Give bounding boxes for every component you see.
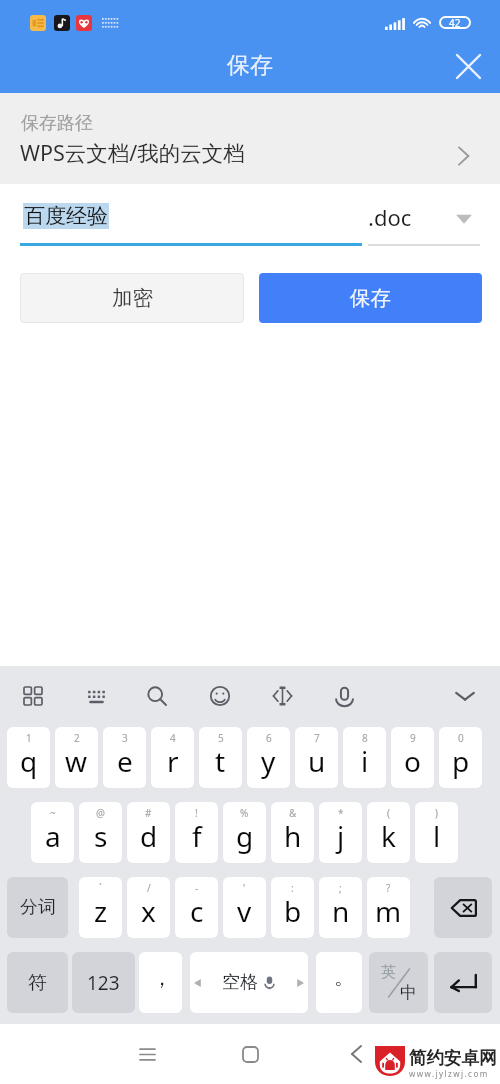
button[interactable]: 符 — [7, 952, 68, 1013]
staticText: w — [65, 742, 88, 780]
button[interactable]: - — [175, 877, 218, 938]
button[interactable]: 4 — [151, 727, 194, 788]
staticText: 7 — [314, 731, 320, 745]
button[interactable]: Enter — [434, 952, 492, 1013]
staticText: 分词 — [20, 896, 56, 919]
staticText: 。 — [334, 965, 354, 990]
staticText: c — [190, 892, 204, 930]
staticText: # — [145, 806, 152, 820]
staticText: 5 — [218, 731, 224, 745]
button[interactable]: / — [127, 877, 170, 938]
staticText: d — [140, 817, 158, 855]
staticText: o — [404, 742, 421, 780]
button[interactable]: @ — [79, 802, 122, 863]
staticText: x — [141, 892, 156, 930]
staticText: * — [338, 806, 344, 820]
staticText: i — [361, 742, 369, 780]
button[interactable]: Search — [136, 675, 178, 717]
staticText: / — [147, 881, 151, 895]
button[interactable]: 0 — [439, 727, 482, 788]
button[interactable]: Close — [444, 42, 492, 90]
staticText: 42 — [449, 16, 461, 29]
staticText: 百度经验 — [24, 203, 108, 229]
staticText: : — [291, 881, 294, 895]
button[interactable]: Back — [339, 1037, 373, 1071]
staticText: q — [20, 742, 38, 780]
button[interactable]: ` — [79, 877, 122, 938]
button[interactable]: 加密 — [20, 273, 244, 323]
button[interactable]: * — [319, 802, 362, 863]
button[interactable]: Backspace — [434, 877, 492, 938]
staticText: b — [284, 892, 302, 930]
staticText: g — [236, 817, 254, 855]
button[interactable]: & — [271, 802, 314, 863]
button[interactable]: # — [127, 802, 170, 863]
staticText: 保存 — [350, 285, 391, 311]
button[interactable]: ! — [175, 802, 218, 863]
staticText: 6 — [266, 731, 272, 745]
staticText: ( — [387, 806, 390, 820]
button[interactable]: Text cursor — [261, 675, 303, 717]
button[interactable]: 2 — [55, 727, 98, 788]
staticText: 符 — [28, 971, 47, 995]
staticText: 中 — [400, 982, 417, 1003]
button[interactable]: Hide keyboard — [444, 675, 486, 717]
button[interactable]: ( — [367, 802, 410, 863]
staticText: j — [337, 817, 345, 855]
staticText: l — [433, 817, 441, 855]
button[interactable]: 5 — [199, 727, 242, 788]
button[interactable]: Voice input — [323, 675, 365, 717]
button[interactable]: 1 — [7, 727, 50, 788]
staticText: e — [117, 742, 133, 780]
button[interactable]: 7 — [295, 727, 338, 788]
button[interactable]: 分词 — [7, 877, 68, 938]
staticText: y — [261, 742, 276, 780]
button[interactable]: 保存路径 — [0, 93, 500, 184]
staticText: % — [240, 806, 249, 820]
button[interactable]: 123 — [72, 952, 135, 1013]
staticText: n — [332, 892, 350, 930]
button[interactable]: % — [223, 802, 266, 863]
button[interactable]: 9 — [391, 727, 434, 788]
staticText: z — [94, 892, 108, 930]
button[interactable]: Keyboard — [75, 675, 117, 717]
button[interactable]: ' — [223, 877, 266, 938]
staticText: 123 — [87, 970, 120, 996]
button[interactable]: 英 — [369, 952, 428, 1013]
button[interactable]: 6 — [247, 727, 290, 788]
staticText: h — [284, 817, 302, 855]
staticText: 1 — [26, 731, 32, 745]
button[interactable]: Recents — [130, 1037, 164, 1071]
staticText: 3 — [122, 731, 128, 745]
button[interactable]: Home — [233, 1037, 267, 1071]
staticText: 9 — [410, 731, 416, 745]
button[interactable]: ， — [139, 952, 182, 1013]
button[interactable]: 8 — [343, 727, 386, 788]
staticText: k — [381, 817, 396, 855]
staticText: ? — [386, 881, 391, 895]
staticText: u — [308, 742, 326, 780]
staticText: 4 — [170, 731, 176, 745]
button[interactable]: 。 — [316, 952, 362, 1013]
button[interactable]: ; — [319, 877, 362, 938]
staticText: 英 — [381, 963, 396, 982]
staticText: www.jylzwj.com — [409, 1068, 489, 1079]
staticText: & — [289, 806, 297, 820]
button[interactable]: 保存 — [259, 273, 482, 323]
staticText: 2 — [74, 731, 80, 745]
button[interactable]: Emoji — [199, 675, 241, 717]
button[interactable]: ? — [367, 877, 410, 938]
button[interactable]: Grid — [12, 675, 54, 717]
button[interactable]: 空格 — [190, 952, 308, 1013]
button[interactable]: ) — [415, 802, 458, 863]
button[interactable]: 3 — [103, 727, 146, 788]
staticText: f — [192, 817, 202, 855]
button[interactable]: ~ — [31, 802, 74, 863]
staticText: 加密 — [112, 285, 153, 311]
staticText: ~ — [50, 806, 56, 820]
staticText: ， — [152, 966, 172, 991]
staticText: 保存 — [227, 51, 273, 80]
button[interactable]: : — [271, 877, 314, 938]
staticText: a — [45, 817, 61, 855]
staticText: p — [452, 742, 470, 780]
